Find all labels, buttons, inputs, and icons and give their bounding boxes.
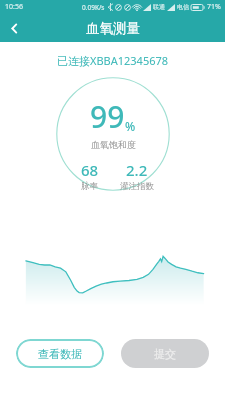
staticText: 灌注指数	[120, 181, 154, 191]
staticText: 电信	[177, 3, 189, 11]
staticText: 2.2	[126, 160, 148, 180]
staticText: 68	[81, 160, 99, 180]
staticText: 查看数据	[38, 347, 82, 361]
staticText: 提交	[154, 347, 176, 361]
button[interactable]: 查看数据	[16, 339, 104, 368]
staticText: 10:56	[5, 2, 23, 12]
staticText: 血氧测量	[86, 20, 140, 37]
staticText: %	[125, 118, 136, 134]
staticText: 联通	[153, 3, 165, 11]
staticText: 已连接XBBA12345678	[0, 53, 225, 68]
button[interactable]: 提交	[121, 339, 209, 368]
staticText: 脉率	[81, 181, 98, 191]
staticText: 99	[90, 96, 125, 137]
staticText: 0.09K/s	[82, 3, 105, 12]
button[interactable]: Back	[0, 14, 28, 42]
staticText: 71%	[207, 2, 221, 12]
staticText: 血氧饱和度	[91, 139, 136, 150]
